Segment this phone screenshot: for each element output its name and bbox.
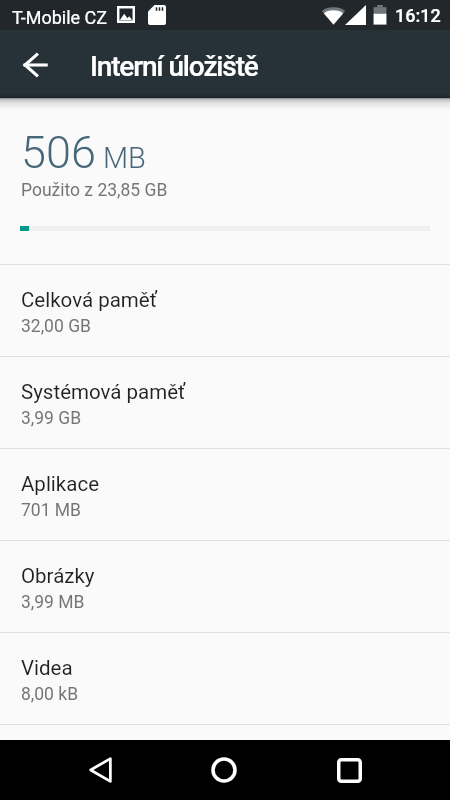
staticText: Interní úložiště bbox=[90, 50, 258, 83]
button[interactable]: Back bbox=[72, 742, 128, 798]
button[interactable]: Celková paměť bbox=[0, 264, 450, 356]
staticText: MB bbox=[103, 141, 146, 175]
staticText: Celková paměť bbox=[21, 288, 157, 312]
button[interactable]: Obrázky bbox=[0, 540, 450, 632]
staticText: T-Mobile CZ bbox=[12, 7, 108, 28]
staticText: 16:12 bbox=[395, 5, 441, 26]
staticText: Aplikace bbox=[21, 472, 99, 496]
staticText: 701 MB bbox=[21, 500, 82, 521]
button[interactable]: Back bbox=[12, 41, 60, 89]
button[interactable]: Videa bbox=[0, 632, 450, 724]
staticText: 506 bbox=[21, 126, 96, 179]
staticText: 3,99 MB bbox=[21, 592, 85, 613]
button[interactable]: Home bbox=[196, 742, 252, 798]
staticText: Videa bbox=[21, 656, 73, 680]
staticText: 3,99 GB bbox=[21, 408, 82, 429]
button[interactable]: Aplikace bbox=[0, 448, 450, 540]
staticText: Použito z 23,85 GB bbox=[21, 180, 168, 201]
staticText: 32,00 GB bbox=[21, 316, 91, 337]
staticText: Obrázky bbox=[21, 564, 95, 588]
staticText: 8,00 kB bbox=[21, 684, 79, 705]
button[interactable]: Recent apps bbox=[321, 742, 377, 798]
button[interactable]: Systémová paměť bbox=[0, 356, 450, 448]
staticText: Systémová paměť bbox=[21, 380, 186, 404]
